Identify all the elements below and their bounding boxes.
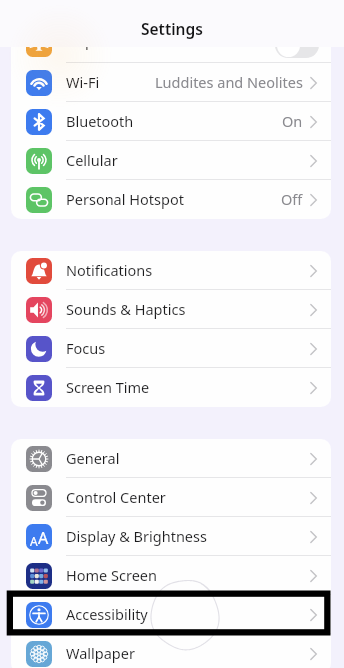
button[interactable]: Notifications	[11, 251, 331, 290]
staticText: Focus	[66, 338, 106, 358]
staticText: Settings	[141, 18, 203, 39]
button[interactable]: Screen Time	[11, 368, 331, 407]
button[interactable]: Sounds & Haptics	[11, 290, 331, 329]
button[interactable]: General	[11, 439, 331, 478]
button[interactable]: Airplane Mode toggle	[275, 32, 319, 58]
button[interactable]: Personal Hotspot	[11, 180, 331, 219]
staticText: Sounds & Haptics	[66, 299, 186, 319]
staticText: Personal Hotspot	[66, 189, 184, 209]
staticText: Wi-Fi	[66, 72, 100, 92]
staticText: Home Screen	[66, 565, 157, 585]
button[interactable]: Focus	[11, 329, 331, 368]
button[interactable]: Cellular	[11, 141, 331, 180]
staticText: On	[282, 111, 303, 131]
staticText: Control Center	[66, 487, 166, 507]
staticText: Wallpaper	[66, 643, 135, 663]
staticText: Bluetooth	[66, 111, 134, 131]
staticText: A	[30, 533, 38, 549]
button[interactable]: Wallpaper	[11, 634, 331, 668]
staticText: Notifications	[66, 260, 153, 280]
staticText: General	[66, 448, 120, 468]
button[interactable]: Airplane Mode	[11, 24, 331, 63]
button[interactable]: Wi-Fi	[11, 63, 331, 102]
button[interactable]: Bluetooth	[11, 102, 331, 141]
staticText: Off	[281, 189, 303, 209]
staticText: Airplane Mode	[66, 30, 166, 50]
staticText: Accessibility	[66, 604, 148, 624]
button[interactable]: Control Center	[11, 478, 331, 517]
staticText: Screen Time	[66, 377, 150, 397]
staticText: Display & Brightness	[66, 526, 207, 546]
button[interactable]: VPN	[11, 0, 331, 24]
staticText: Luddites and Neolites	[155, 72, 303, 92]
button[interactable]: A	[11, 517, 331, 556]
button[interactable]: Accessibility	[11, 595, 331, 634]
button[interactable]: Home Screen	[11, 556, 331, 595]
staticText: A	[38, 527, 49, 549]
staticText: Cellular	[66, 150, 118, 170]
